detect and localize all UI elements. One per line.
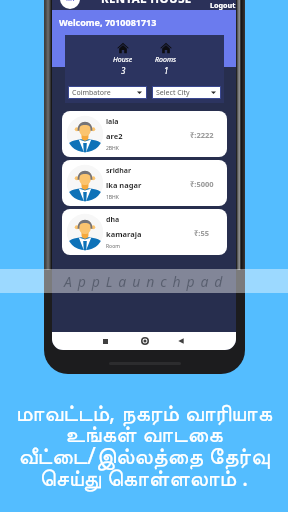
button[interactable]: dha: [62, 209, 227, 255]
button[interactable]: Home: [141, 337, 149, 345]
staticText: ₹:5000: [190, 179, 214, 189]
staticText: sridhar: [106, 166, 132, 176]
button[interactable]: Logout: [210, 0, 236, 10]
staticText: House: [113, 55, 133, 65]
staticText: lala: [106, 117, 119, 127]
staticText: RENTAL HOUSE: [101, 0, 192, 7]
staticText: are2: [106, 131, 123, 141]
staticText: ₹:2222: [190, 130, 214, 140]
other: App logo: [60, 0, 80, 9]
staticText: Select City: [156, 88, 190, 98]
button[interactable]: lala: [62, 111, 227, 157]
staticText: 2BHK: [106, 145, 119, 152]
staticText: 1: [164, 65, 169, 76]
staticText: மாவட்டம், நகரம் வாரியாக உங்கள் வாடகை வீட…: [0, 396, 288, 493]
staticText: RH: [66, 0, 75, 3]
button[interactable]: Select City: [152, 86, 221, 99]
staticText: kamaraja: [106, 229, 142, 239]
staticText: Rooms: [155, 55, 177, 65]
staticText: lka nagar: [106, 180, 142, 190]
button[interactable]: sridhar: [62, 160, 227, 206]
staticText: ₹:55: [194, 228, 209, 238]
staticText: Room: [106, 243, 120, 250]
staticText: Coimbatore: [72, 88, 111, 98]
staticText: 1BHK: [106, 194, 119, 201]
staticText: dha: [106, 215, 120, 225]
staticText: 3: [121, 65, 126, 76]
staticText: Welcome, 7010081713: [59, 16, 157, 28]
staticText: AppLaunchpad: [64, 272, 229, 291]
button[interactable]: Coimbatore: [68, 86, 147, 99]
button[interactable]: Back: [178, 338, 184, 344]
